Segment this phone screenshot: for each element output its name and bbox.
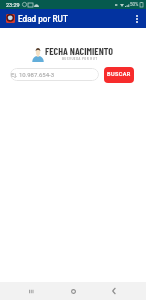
staticText: Ej. 10.987.654-3 [11, 71, 55, 78]
button[interactable]: Ej. 10.987.654-3 [10, 68, 99, 81]
staticText: Edad por RUT [18, 14, 68, 24]
staticText: BUSQUEDA POR RUT [62, 56, 98, 61]
button[interactable]: Back [100, 282, 128, 300]
staticText: 23:29 [6, 2, 20, 8]
button[interactable]: More options [129, 11, 145, 27]
staticText: FECHA NACIMIENTO [45, 45, 114, 57]
staticText: BUSCAR [107, 71, 131, 78]
button[interactable]: Home [59, 282, 87, 300]
staticText: 50% [130, 2, 139, 7]
button[interactable]: BUSCAR [104, 67, 134, 83]
button[interactable]: Recents [17, 282, 45, 300]
